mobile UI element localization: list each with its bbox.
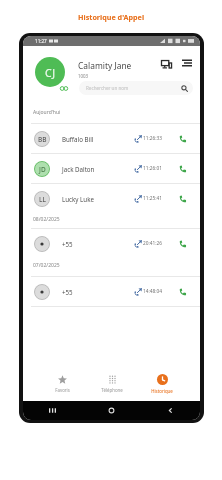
button[interactable]: Call Jack Dalton — [177, 163, 188, 174]
staticText: 08/02/2025 — [33, 216, 60, 223]
button[interactable]: Historique — [137, 367, 187, 401]
button[interactable]: JD — [23, 154, 200, 183]
staticText: Lucky Luke — [62, 195, 94, 203]
button[interactable]: Call Lucky Luke — [177, 193, 188, 204]
staticText: Favoris — [55, 387, 70, 393]
button[interactable]: Cast to device — [157, 55, 176, 74]
button[interactable]: Recent apps — [23, 401, 82, 420]
staticText: LL — [39, 195, 46, 204]
staticText: 11:26:33 — [143, 135, 163, 142]
staticText: Rechercher un nom — [86, 85, 129, 91]
staticText: BB — [38, 135, 47, 144]
button[interactable]: LL — [23, 184, 200, 213]
staticText: Buffalo Bill — [62, 135, 94, 143]
button[interactable]: Téléphone — [87, 367, 137, 401]
staticText: Historique — [151, 388, 173, 394]
staticText: 1003 — [78, 73, 89, 79]
staticText: +55 — [62, 240, 73, 248]
button[interactable]: Call Buffalo Bill — [177, 133, 188, 144]
button[interactable]: +55 — [23, 277, 200, 306]
button[interactable]: Call +55 — [177, 238, 188, 249]
button[interactable]: Back — [141, 401, 200, 420]
button[interactable]: Favoris — [37, 367, 87, 401]
button[interactable]: +55 — [23, 229, 200, 258]
button[interactable]: Call +55 — [177, 286, 188, 297]
button[interactable]: BB — [23, 124, 200, 153]
button[interactable]: CJ — [35, 57, 65, 87]
staticText: 11:25:41 — [143, 195, 163, 202]
staticText: Aujourd'hui — [33, 109, 61, 116]
button[interactable]: Home — [82, 401, 141, 420]
staticText: 20:41:26 — [143, 240, 163, 247]
staticText: 07/02/2025 — [33, 262, 60, 269]
staticText: 11:26:01 — [143, 165, 163, 172]
staticText: JD — [39, 165, 46, 174]
staticText: Téléphone — [101, 387, 123, 393]
staticText: Calamity Jane — [78, 60, 132, 71]
staticText: CJ — [45, 66, 56, 80]
staticText: +55 — [62, 288, 73, 296]
staticText: 11:27 — [35, 38, 47, 44]
staticText: Jack Dalton — [62, 165, 95, 173]
button[interactable]: Menu — [180, 56, 193, 69]
button[interactable]: Rechercher un nom — [79, 81, 193, 95]
staticText: 14:48:04 — [143, 288, 163, 295]
staticText: Historique d'Appel — [78, 12, 145, 22]
